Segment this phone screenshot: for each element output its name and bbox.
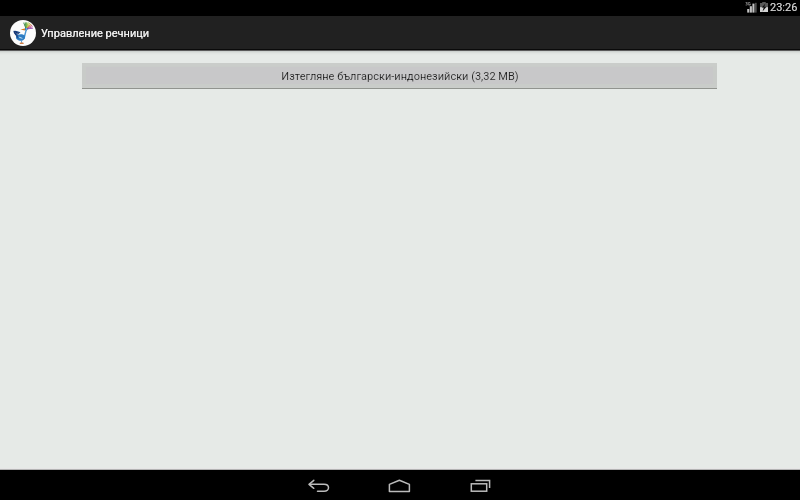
button[interactable]: Back (291, 470, 347, 500)
button[interactable]: Recent apps (452, 470, 508, 500)
button[interactable]: Home (372, 470, 428, 500)
staticText: Изтегляне български-индонезийски (3,32 M… (281, 70, 519, 83)
button[interactable]: Изтегляне български-индонезийски (3,32 M… (82, 63, 717, 88)
staticText: 23:26 (770, 1, 798, 14)
staticText: Управление речници (41, 27, 150, 40)
